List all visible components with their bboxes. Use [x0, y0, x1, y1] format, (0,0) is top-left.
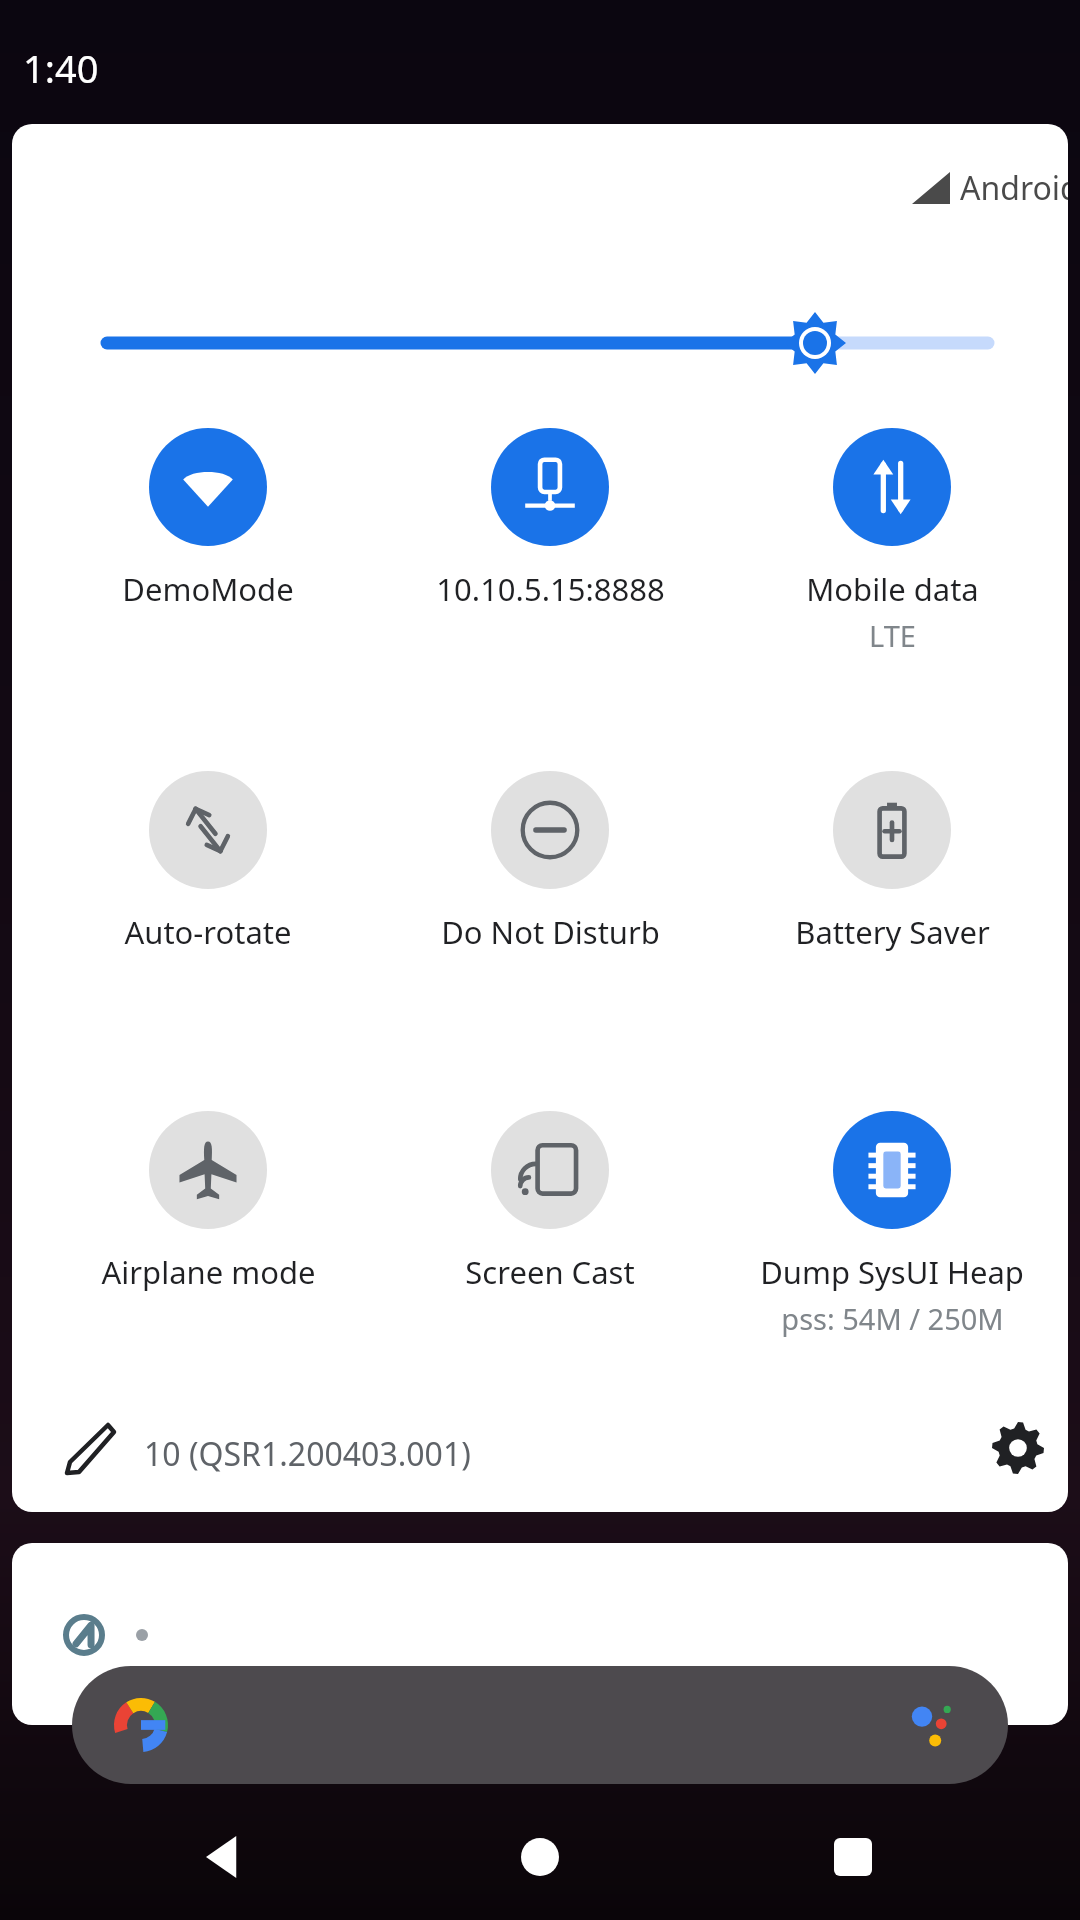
button[interactable]: Dump SysUI Heap — [721, 1111, 1063, 1338]
staticText: Mobile data — [806, 568, 979, 610]
button[interactable]: Battery Saver — [721, 771, 1063, 953]
button[interactable]: Auto-rotate — [37, 771, 379, 953]
button[interactable]: Settings — [980, 1410, 1056, 1486]
button[interactable]: Brightness — [12, 313, 1068, 373]
staticText: 10 (QSR1.200403.001) — [144, 1432, 471, 1476]
staticText: Screen Cast — [465, 1251, 635, 1293]
button[interactable]: Edit — [52, 1410, 128, 1486]
button[interactable]: Screen Cast — [379, 1111, 721, 1293]
staticText: LTE — [869, 616, 916, 655]
button[interactable]: DemoMode — [37, 428, 379, 610]
button[interactable] — [72, 1666, 1008, 1784]
staticText: Android — [960, 166, 1068, 210]
staticText: 1:40 — [23, 42, 99, 94]
staticText: Airplane mode — [101, 1251, 316, 1293]
staticText: 10.10.5.15:8888 — [436, 568, 665, 610]
button[interactable]: 10.10.5.15:8888 — [379, 428, 721, 610]
button[interactable]: Mobile data — [721, 428, 1063, 655]
staticText: pss: 54M / 250M — [781, 1299, 1004, 1338]
staticText: Auto-rotate — [124, 911, 292, 953]
staticText: Dump SysUI Heap — [760, 1251, 1024, 1293]
staticText: Battery Saver — [795, 911, 990, 953]
button[interactable]: Recents — [806, 1810, 900, 1904]
button[interactable]: Do Not Disturb — [379, 771, 721, 953]
staticText: Do Not Disturb — [441, 911, 660, 953]
button[interactable]: Home — [493, 1810, 587, 1904]
button[interactable] — [12, 1543, 1068, 1725]
staticText: DemoMode — [122, 568, 294, 610]
button[interactable]: Airplane mode — [37, 1111, 379, 1293]
button[interactable]: Back — [180, 1810, 274, 1904]
